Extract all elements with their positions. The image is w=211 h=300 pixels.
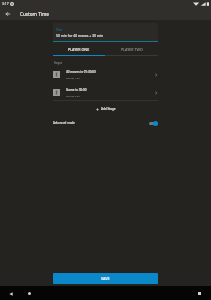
staticText: PLAYER TWO: [121, 47, 143, 52]
button[interactable]: Game in 30:00: [53, 88, 158, 97]
staticText: Custom Time: [20, 11, 49, 17]
staticText: Game in 30:00: [66, 88, 87, 92]
staticText: Time: [56, 28, 62, 32]
staticText: Advanced mode: [53, 121, 75, 125]
button[interactable]: Advanced mode: [53, 119, 158, 127]
staticText: 3:17: [2, 1, 9, 6]
button[interactable]: Home: [24, 288, 35, 299]
staticText: Add Stage: [101, 107, 116, 111]
staticText: Stages: [54, 61, 63, 65]
button[interactable]: PLAYER ONE: [53, 44, 105, 56]
button[interactable]: Time: [53, 23, 158, 41]
staticText: 40 moves in 01:30:00: [66, 70, 96, 74]
button[interactable]: 40 moves in 01:30:00: [53, 70, 158, 79]
staticText: Fischer, 0:30: [66, 94, 80, 97]
button[interactable]: PLAYER TWO: [105, 44, 158, 56]
staticText: SAVE: [101, 276, 110, 281]
button[interactable]: Navigate up: [2, 8, 14, 20]
staticText: 50 min for 40 moves + 30 min: [56, 33, 104, 38]
button[interactable]: Recent apps: [194, 288, 205, 299]
button[interactable]: Add Stage: [94, 106, 118, 112]
staticText: Fischer, 1:00: [66, 76, 80, 79]
button[interactable]: SAVE: [53, 273, 158, 284]
staticText: PLAYER ONE: [68, 47, 90, 52]
button[interactable]: Back: [5, 288, 16, 299]
